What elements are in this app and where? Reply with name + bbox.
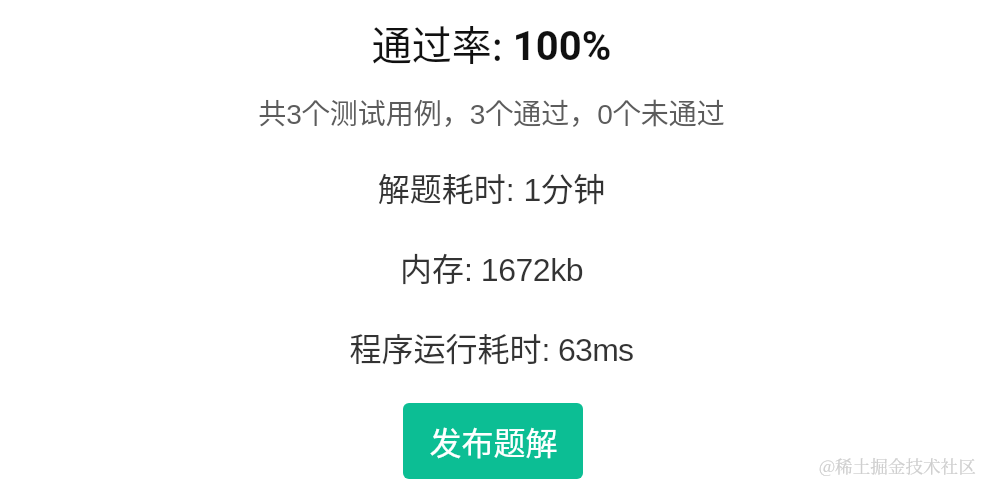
staticText: 共3个测试用例，3个通过，0个未通过 (0, 92, 983, 133)
button[interactable]: 发布题解 (403, 403, 583, 479)
staticText: 内存: 1672kb (0, 244, 983, 290)
staticText: 解题耗时: 1分钟 (0, 164, 983, 210)
staticText: 发布题解 (429, 418, 558, 464)
staticText: @稀土掘金技术社区 (819, 453, 976, 478)
staticText: 通过率: 100% (0, 14, 983, 72)
staticText: 程序运行耗时: 63ms (0, 324, 983, 370)
